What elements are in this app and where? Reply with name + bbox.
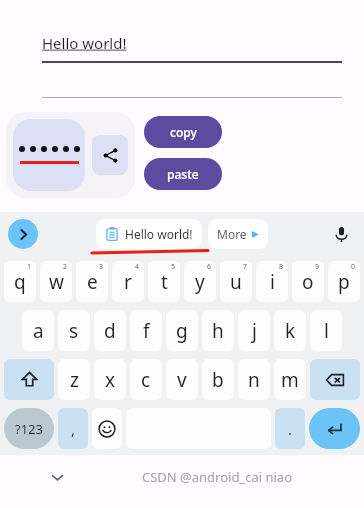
staticText: l [324,318,329,344]
button[interactable]: m [274,359,306,400]
button[interactable]: Hello world! [96,219,202,249]
staticText: 3 [99,262,104,272]
staticText: 7 [243,262,248,272]
staticText: j [252,318,257,344]
staticText: t [161,269,168,295]
button[interactable]: 9 [292,261,324,302]
button[interactable]: Voice input [326,219,356,249]
button[interactable]: 6 [184,261,216,302]
button[interactable]: v [166,359,198,400]
button[interactable]: j [238,310,270,351]
button[interactable]: z [58,359,90,400]
staticText: n [248,367,260,393]
staticText: . [288,419,293,439]
staticText: x [105,367,116,393]
staticText: g [176,318,188,344]
staticText: 5 [171,262,176,272]
button[interactable]: x [94,359,126,400]
button[interactable]: b [202,359,234,400]
staticText: i [270,269,275,295]
button[interactable]: k [274,310,306,351]
staticText: c [141,367,151,393]
button[interactable]: , [58,408,88,449]
staticText: u [230,269,242,295]
button[interactable]: Hide keyboard [44,464,70,490]
staticText: 9 [315,262,320,272]
staticText: f [143,318,150,344]
staticText: k [285,318,296,344]
staticText: copy [170,124,197,140]
staticText: 6 [207,262,212,272]
button[interactable] [13,119,85,191]
button[interactable]: 0 [328,261,360,302]
staticText: Hello world! [42,33,127,53]
button[interactable]: n [238,359,270,400]
staticText: h [212,318,224,344]
staticText: s [69,318,79,344]
staticText: 0 [351,262,356,272]
staticText: 2 [63,262,68,272]
button[interactable]: 7 [220,261,252,302]
button[interactable]: copy [144,116,222,148]
staticText: d [104,318,116,344]
staticText: ?123 [15,420,43,438]
staticText: CSDN @android_cai niao [142,468,293,486]
button[interactable]: 4 [112,261,144,302]
button[interactable]: Share [92,135,128,175]
staticText: 8 [279,262,284,272]
staticText: r [124,269,132,295]
staticText: a [33,318,44,344]
staticText: v [177,367,187,393]
button[interactable]: 3 [76,261,108,302]
staticText: p [338,269,350,295]
button[interactable]: d [94,310,126,351]
button[interactable]: s [58,310,90,351]
button[interactable]: a [22,310,54,351]
staticText: w [49,269,64,295]
button[interactable]: Shift [4,359,54,400]
staticText: , [71,419,76,439]
button[interactable]: Enter [309,408,360,449]
staticText: y [195,269,205,295]
button[interactable]: c [130,359,162,400]
button[interactable]: More [208,219,268,249]
button[interactable]: Expand suggestions [8,219,38,249]
staticText: o [302,269,314,295]
staticText: 4 [135,262,140,272]
button[interactable]: 2 [40,261,72,302]
button[interactable]: Emoji [92,408,122,449]
button[interactable]: 5 [148,261,180,302]
staticText: m [281,367,299,393]
staticText: paste [167,166,199,182]
button[interactable]: l [310,310,342,351]
staticText: q [14,269,26,295]
button[interactable]: ?123 [4,408,54,449]
staticText: Hello world! [125,226,193,242]
staticText: b [212,367,224,393]
button[interactable]: g [166,310,198,351]
staticText: More [217,226,247,242]
button[interactable]: f [130,310,162,351]
button[interactable]: Backspace [310,359,360,400]
button[interactable]: paste [144,158,222,190]
button[interactable]: h [202,310,234,351]
staticText: e [87,269,98,295]
button[interactable]: . [275,408,305,449]
staticText: 1 [27,262,32,272]
button[interactable]: 8 [256,261,288,302]
button[interactable]: 1 [4,261,36,302]
staticText: z [70,367,79,393]
